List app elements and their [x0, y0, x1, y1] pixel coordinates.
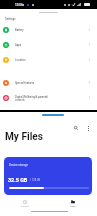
staticText: Device storage	[9, 163, 28, 166]
staticText: My Files	[5, 131, 43, 143]
staticText: Recents	[13, 205, 37, 208]
button[interactable]: Special features	[0, 75, 97, 90]
button[interactable]: More options	[83, 123, 93, 133]
staticText: Special features	[15, 81, 85, 84]
button[interactable]: Search	[71, 123, 81, 133]
staticText: Location	[15, 58, 85, 61]
staticText: Files	[61, 205, 85, 208]
staticText: Settings	[5, 17, 16, 20]
staticText: Digital Wellbeing & parental controls	[15, 95, 85, 101]
button[interactable]: Battery	[0, 22, 97, 37]
button[interactable]: Recents	[13, 200, 37, 211]
button[interactable]: Files	[61, 200, 85, 211]
staticText: Battery	[15, 28, 85, 31]
staticText: 32.5 GB	[8, 177, 28, 183]
button[interactable]: Location	[0, 52, 97, 67]
staticText: / 128 GB	[30, 179, 41, 182]
button[interactable]: Device storage	[4, 157, 92, 195]
button[interactable]: Digital Wellbeing & parental controls	[0, 90, 97, 105]
staticText: 12:56	[15, 3, 23, 7]
button[interactable]: Apps	[0, 37, 97, 52]
staticText: Apps	[15, 43, 85, 46]
